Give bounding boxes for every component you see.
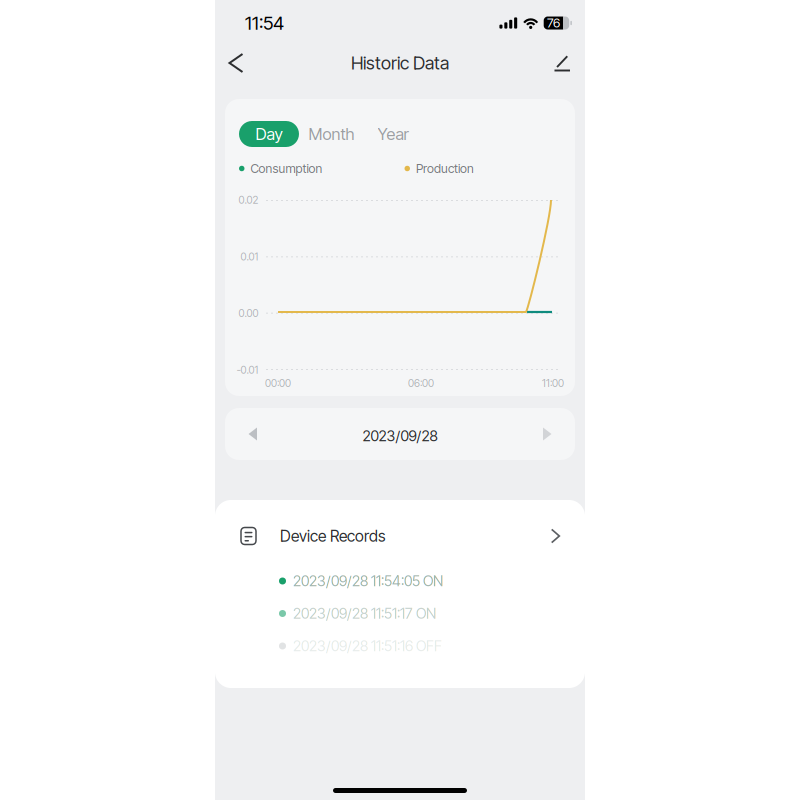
button[interactable]: Previous day xyxy=(234,413,271,454)
staticText: 2023/09/28 11:51:17 ON xyxy=(293,605,436,622)
staticText: 11:00 xyxy=(542,377,564,390)
staticText: 11:54 xyxy=(245,12,284,34)
button[interactable]: Edit xyxy=(547,46,577,79)
staticText: Month xyxy=(308,124,354,144)
button[interactable]: Next day xyxy=(528,413,566,454)
staticText: 2023/09/28 xyxy=(362,427,437,445)
button[interactable]: Back xyxy=(219,45,253,81)
staticText: 2023/09/28 11:51:16 OFF xyxy=(293,637,442,655)
button[interactable]: Year xyxy=(367,121,419,147)
staticText: 2023/09/28 11:54:05 ON xyxy=(293,572,443,590)
button[interactable]: Device Records xyxy=(215,500,585,572)
staticText: Production xyxy=(416,161,474,176)
staticText: Historic Data xyxy=(351,52,449,74)
staticText: -0.01 xyxy=(236,364,258,376)
staticText: 76 xyxy=(547,15,560,31)
button[interactable]: Day xyxy=(239,121,299,147)
staticText: Device Records xyxy=(280,526,385,545)
staticText: 06:00 xyxy=(408,377,434,390)
button[interactable]: Month xyxy=(303,121,360,147)
staticText: 0.02 xyxy=(238,194,258,206)
staticText: Consumption xyxy=(250,161,322,176)
staticText: 0.00 xyxy=(238,307,258,320)
staticText: Year xyxy=(377,124,408,144)
staticText: 0.01 xyxy=(240,250,258,263)
staticText: Day xyxy=(255,124,282,144)
staticText: 00:00 xyxy=(265,377,291,390)
